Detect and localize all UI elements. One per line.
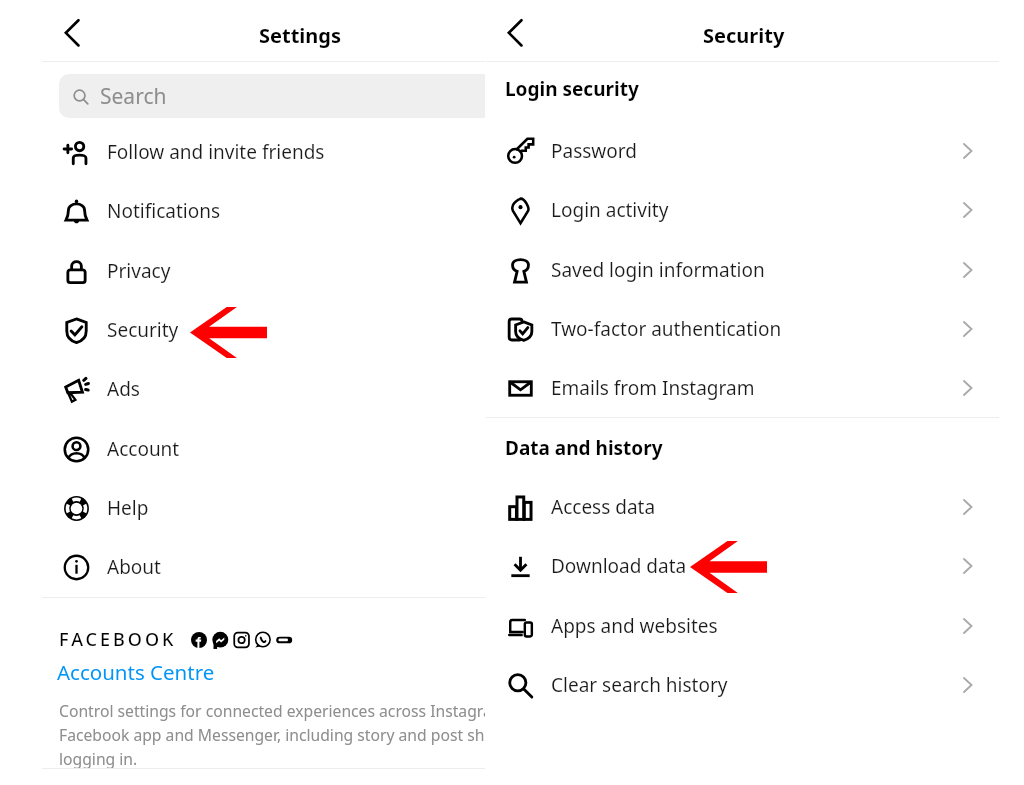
button[interactable]: Clear search history <box>486 660 1024 710</box>
staticText: Saved login information <box>551 257 960 283</box>
staticText: About <box>107 554 161 580</box>
staticText: Notifications <box>107 198 221 224</box>
staticText: Clear search history <box>551 672 960 698</box>
button[interactable]: Security <box>0 305 485 355</box>
staticText: Help <box>107 495 149 521</box>
staticText: Download data <box>551 553 960 579</box>
button[interactable]: Accounts Centre <box>57 658 215 686</box>
button[interactable]: Download data <box>486 541 1024 591</box>
button[interactable]: Back <box>498 13 536 51</box>
staticText: Search <box>100 82 167 111</box>
button[interactable]: Account <box>0 424 485 474</box>
staticText: Login security <box>505 76 639 102</box>
button[interactable]: Saved login information <box>486 245 1024 295</box>
button[interactable]: Login activity <box>486 185 1024 235</box>
staticText: Security <box>703 22 785 49</box>
staticText: Data and history <box>505 435 663 461</box>
button[interactable]: Emails from Instagram <box>486 363 1024 413</box>
button[interactable]: About <box>0 542 485 592</box>
button[interactable]: Ads <box>0 364 485 414</box>
button[interactable]: Password <box>486 126 1024 176</box>
staticText: Ads <box>107 376 140 402</box>
staticText: Security <box>107 317 179 343</box>
staticText: Apps and websites <box>551 613 960 639</box>
staticText: Password <box>551 138 960 164</box>
staticText: Follow and invite friends <box>107 139 325 165</box>
button[interactable]: Apps and websites <box>486 601 1024 651</box>
button[interactable]: Help <box>0 483 485 533</box>
staticText: Emails from Instagram <box>551 375 960 401</box>
button[interactable]: Access data <box>486 482 1024 532</box>
button[interactable]: Privacy <box>0 246 485 296</box>
button[interactable]: Notifications <box>0 186 485 236</box>
staticText: Control settings for connected experienc… <box>59 700 485 769</box>
staticText: FACEBOOK <box>59 627 177 652</box>
staticText: Settings <box>259 22 341 49</box>
staticText: Access data <box>551 494 960 520</box>
button[interactable]: Back <box>55 13 93 51</box>
button[interactable]: Search <box>59 74 485 118</box>
staticText: Accounts Centre <box>57 658 215 686</box>
staticText: Login activity <box>551 197 960 223</box>
staticText: Two-factor authentication <box>551 316 960 342</box>
button[interactable]: Follow and invite friends <box>0 127 485 177</box>
staticText: Account <box>107 436 180 462</box>
staticText: Privacy <box>107 258 171 284</box>
button[interactable]: Two-factor authentication <box>486 304 1024 354</box>
